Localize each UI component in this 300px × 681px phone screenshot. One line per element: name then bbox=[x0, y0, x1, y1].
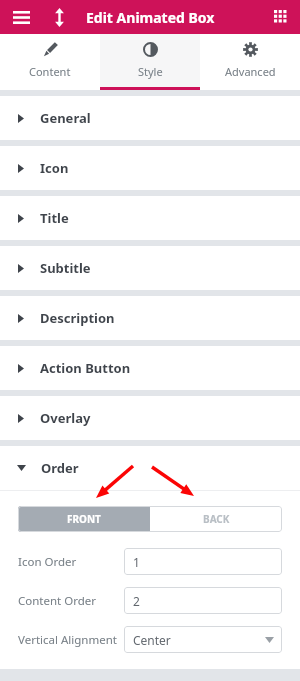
button[interactable]: Subtitle bbox=[0, 246, 300, 290]
staticText: Center bbox=[133, 632, 171, 648]
staticText: Vertical Alignment bbox=[18, 632, 124, 648]
button[interactable]: FRONT bbox=[18, 506, 150, 532]
button[interactable]: Advanced bbox=[200, 34, 300, 90]
staticText: Title bbox=[40, 209, 69, 227]
staticText: Advanced bbox=[225, 64, 276, 79]
staticText: Content Order bbox=[18, 593, 124, 609]
button[interactable]: Widgets bbox=[268, 4, 294, 30]
staticText: 1 bbox=[133, 554, 140, 570]
staticText: General bbox=[40, 109, 91, 127]
button[interactable]: Style bbox=[100, 34, 200, 90]
staticText: Content bbox=[29, 64, 71, 79]
staticText: Order bbox=[41, 459, 79, 477]
button[interactable]: Description bbox=[0, 296, 300, 340]
button[interactable]: Resize panel bbox=[46, 4, 72, 30]
staticText: Action Button bbox=[40, 359, 131, 377]
staticText: Overlay bbox=[40, 409, 91, 427]
staticText: Subtitle bbox=[40, 259, 91, 277]
button[interactable]: Content bbox=[0, 34, 100, 90]
staticText: Style bbox=[138, 64, 163, 79]
button[interactable]: Order bbox=[0, 446, 300, 490]
button[interactable]: Center bbox=[124, 626, 282, 653]
staticText: Icon bbox=[40, 159, 69, 177]
button[interactable]: Action Button bbox=[0, 346, 300, 390]
button[interactable]: Menu bbox=[7, 3, 35, 31]
button[interactable]: Overlay bbox=[0, 396, 300, 440]
staticText: 2 bbox=[133, 593, 140, 609]
staticText: Icon Order bbox=[18, 554, 124, 570]
staticText: FRONT bbox=[67, 512, 101, 526]
staticText: BACK bbox=[203, 512, 230, 526]
staticText: Edit Animated Box bbox=[86, 8, 215, 27]
button[interactable]: 1 bbox=[124, 548, 282, 575]
button[interactable]: 2 bbox=[124, 587, 282, 614]
button[interactable]: BACK bbox=[150, 506, 282, 532]
button[interactable]: Title bbox=[0, 196, 300, 240]
button[interactable]: Icon bbox=[0, 146, 300, 190]
staticText: Description bbox=[40, 309, 115, 327]
button[interactable]: General bbox=[0, 96, 300, 140]
